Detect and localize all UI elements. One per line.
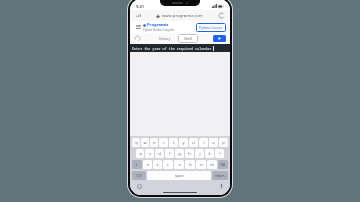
- staticText: e: [153, 140, 156, 145]
- button[interactable]: o: [209, 138, 218, 147]
- button[interactable]: space: [147, 171, 211, 180]
- button[interactable]: w: [141, 138, 149, 147]
- staticText: r: [163, 140, 165, 145]
- button[interactable]: b: [185, 160, 195, 169]
- staticText: s: [149, 151, 151, 156]
- button[interactable]: i: [199, 138, 208, 147]
- staticText: t: [173, 140, 175, 145]
- staticText: space: [175, 174, 184, 178]
- button[interactable]: z: [143, 160, 152, 169]
- button[interactable]: www.programiz.com: [156, 13, 203, 19]
- button[interactable]: t: [169, 138, 178, 147]
- button[interactable]: Run: [213, 35, 226, 42]
- staticText: w: [143, 140, 147, 145]
- staticText: Python Online Compiler: [143, 28, 175, 32]
- button[interactable]: History: [156, 35, 174, 42]
- staticText: 9:41: [136, 4, 144, 9]
- staticText: n: [200, 162, 203, 167]
- staticText: v: [178, 162, 181, 167]
- staticText: Enter the year of the required calendar: [132, 46, 212, 51]
- button[interactable]: s: [145, 149, 154, 158]
- button[interactable]: Page settings: [135, 12, 142, 19]
- button[interactable]: Backspace: [218, 160, 228, 169]
- button[interactable]: h: [185, 149, 194, 158]
- button[interactable]: l: [215, 149, 224, 158]
- staticText: g: [178, 151, 181, 156]
- button[interactable]: m: [207, 160, 217, 169]
- staticText: f: [169, 151, 171, 156]
- button[interactable]: Shift: [132, 160, 142, 169]
- button[interactable]: e: [150, 138, 158, 147]
- button[interactable]: p: [219, 138, 228, 147]
- staticText: l: [219, 151, 221, 156]
- button[interactable]: k: [205, 149, 214, 158]
- button[interactable]: Dictate: [218, 183, 224, 189]
- staticText: b: [189, 162, 192, 167]
- button[interactable]: Reset: [134, 35, 141, 42]
- staticText: ⌫: [220, 163, 226, 167]
- staticText: return: [215, 174, 225, 178]
- staticText: Python Course: [199, 25, 223, 30]
- staticText: q: [135, 140, 138, 145]
- staticText: u: [192, 140, 195, 145]
- staticText: k: [208, 151, 211, 156]
- button[interactable]: Emoji: [136, 183, 142, 189]
- button[interactable]: v: [174, 160, 184, 169]
- button[interactable]: x: [153, 160, 162, 169]
- button[interactable]: Python Course: [196, 23, 226, 32]
- button[interactable]: d: [155, 149, 164, 158]
- button[interactable]: 123: [132, 171, 146, 180]
- staticText: y: [182, 140, 185, 145]
- staticText: z: [147, 162, 149, 167]
- staticText: Shell: [184, 36, 192, 41]
- button[interactable]: r: [159, 138, 168, 147]
- staticText: d: [158, 151, 161, 156]
- button[interactable]: q: [132, 138, 140, 147]
- button[interactable]: u: [189, 138, 198, 147]
- staticText: ⇧: [135, 163, 139, 167]
- staticText: x: [156, 162, 159, 167]
- button[interactable]: Reload: [218, 12, 225, 19]
- staticText: h: [188, 151, 191, 156]
- button[interactable]: Programiz: [143, 22, 175, 32]
- staticText: a: [139, 151, 142, 156]
- staticText: Programiz: [147, 22, 169, 28]
- button[interactable]: c: [163, 160, 173, 169]
- staticText: www.programiz.com: [162, 13, 203, 19]
- staticText: i: [203, 140, 205, 145]
- staticText: j: [199, 151, 201, 156]
- button[interactable]: n: [196, 160, 206, 169]
- staticText: p: [222, 140, 225, 145]
- button[interactable]: f: [165, 149, 174, 158]
- button[interactable]: a: [136, 149, 144, 158]
- button[interactable]: return: [212, 171, 228, 180]
- staticText: m: [210, 162, 214, 167]
- staticText: 123: [136, 174, 142, 178]
- staticText: o: [212, 140, 215, 145]
- button[interactable]: Menu: [134, 23, 142, 31]
- button[interactable]: j: [195, 149, 204, 158]
- button[interactable]: y: [179, 138, 188, 147]
- button[interactable]: Shell: [178, 34, 198, 43]
- button[interactable]: g: [175, 149, 184, 158]
- staticText: c: [167, 162, 169, 167]
